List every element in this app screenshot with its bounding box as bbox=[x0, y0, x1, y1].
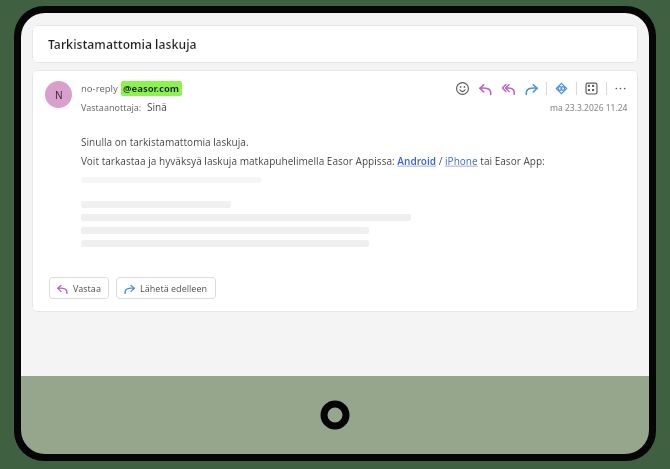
staticText: Lähetä edelleen bbox=[140, 282, 208, 294]
button[interactable]: Forward bbox=[524, 81, 539, 96]
staticText: Tarkistamattomia laskuja bbox=[48, 36, 197, 52]
staticText: Voit tarkastaa ja hyväksyä laskuja matka… bbox=[81, 154, 545, 168]
staticText: ma 23.3.2026 11.24 bbox=[550, 102, 628, 114]
staticText: Vastaa bbox=[73, 282, 101, 294]
button[interactable]: Grid bbox=[584, 81, 599, 96]
button[interactable]: Home bbox=[320, 400, 350, 430]
button[interactable]: Lähetä edelleen bbox=[116, 277, 216, 299]
button[interactable]: Reply bbox=[478, 81, 493, 96]
button[interactable]: Apps bbox=[554, 81, 569, 96]
button[interactable]: Vastaa bbox=[49, 277, 109, 299]
button[interactable]: Reply all bbox=[501, 81, 516, 96]
button[interactable]: More options bbox=[613, 81, 628, 96]
staticText: Sinä bbox=[147, 100, 167, 114]
button[interactable]: N bbox=[45, 81, 72, 108]
staticText: no-reply bbox=[81, 82, 118, 95]
button[interactable]: React bbox=[455, 81, 470, 96]
staticText: Vastaanottaja: bbox=[81, 101, 142, 113]
staticText: Sinulla on tarkistamattomia laskuja. bbox=[81, 135, 249, 149]
staticText: N bbox=[55, 88, 63, 102]
staticText: @easor.com bbox=[123, 82, 180, 95]
button[interactable]: Tarkistamattomia laskuja bbox=[32, 25, 638, 63]
